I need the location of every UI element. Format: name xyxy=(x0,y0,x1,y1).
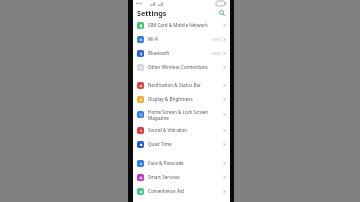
staticText: Face & Passcode xyxy=(148,160,184,166)
staticText: Wi-Fi xyxy=(148,36,159,42)
button[interactable]: Notification & Status Bar xyxy=(133,78,230,92)
button[interactable]: Sound & Vibration xyxy=(133,123,230,137)
staticText: Notification & Status Bar xyxy=(148,82,201,88)
staticText: Settings xyxy=(137,8,167,18)
button[interactable]: Wi-Fi xyxy=(133,32,230,46)
staticText: SIM Card & Mobile Network xyxy=(148,22,208,28)
button[interactable]: Other Wireless Connections xyxy=(133,60,230,74)
button[interactable]: SIM Card & Mobile Network xyxy=(133,18,230,32)
button[interactable]: Bluetooth xyxy=(133,46,230,60)
button[interactable]: Convenience Aid xyxy=(133,184,230,198)
staticText: Convenience Aid xyxy=(148,188,184,194)
staticText: Quiet Time xyxy=(148,141,172,147)
button[interactable]: Home Screen & Lock Screen Magazine xyxy=(133,106,230,123)
staticText: Other Wireless Connections xyxy=(148,64,208,70)
button[interactable]: Display & Brightness xyxy=(133,92,230,106)
staticText: Smart Services xyxy=(148,174,180,180)
button[interactable]: Face & Passcode xyxy=(133,156,230,170)
staticText: Sound & Vibration xyxy=(148,127,188,133)
button[interactable]: Search settings xyxy=(217,8,226,17)
staticText: Display & Brightness xyxy=(148,96,193,102)
staticText: Bluetooth xyxy=(148,50,170,56)
staticText: Home Screen & Lock Screen Magazine xyxy=(148,109,209,121)
button[interactable]: Smart Services xyxy=(133,170,230,184)
button[interactable]: Quiet Time xyxy=(133,137,230,151)
